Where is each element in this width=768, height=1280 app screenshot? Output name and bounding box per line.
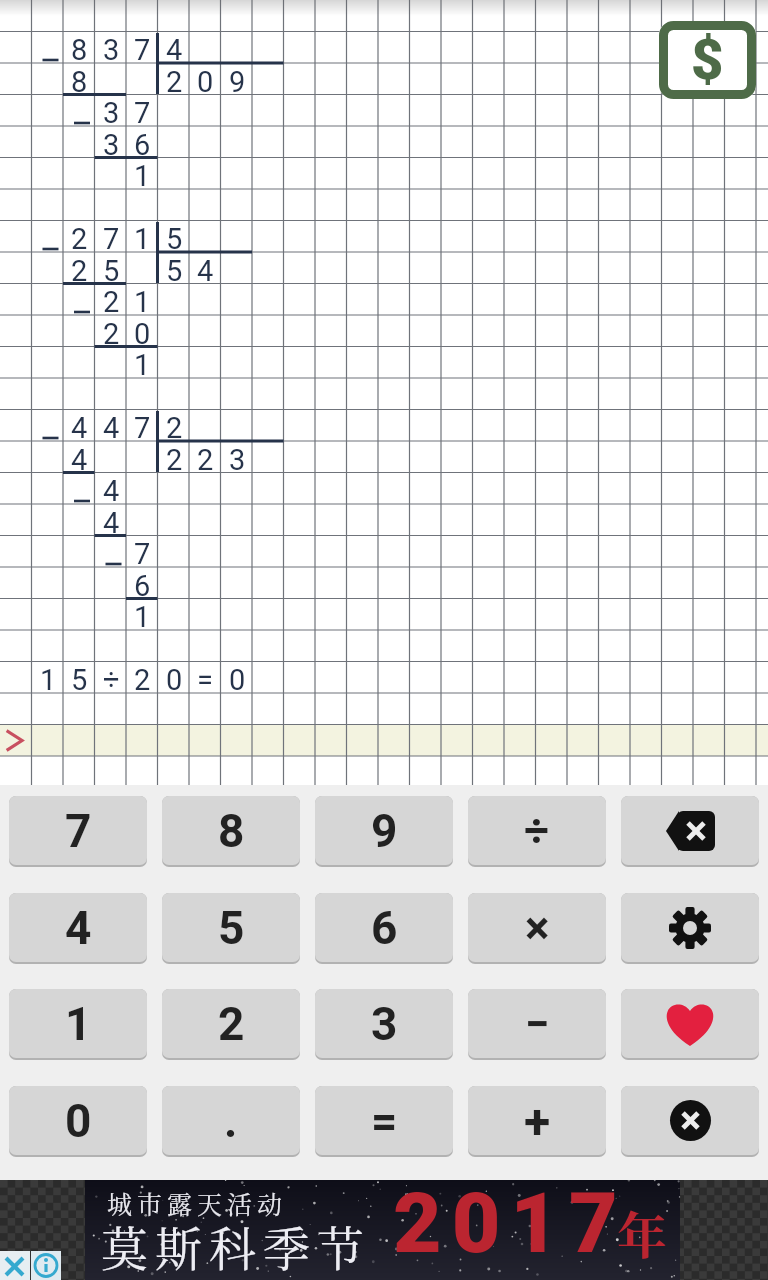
staticText: 5 bbox=[218, 901, 245, 955]
button[interactable] bbox=[621, 893, 759, 964]
staticText: 年 bbox=[617, 1196, 667, 1268]
staticText: 6 bbox=[371, 901, 398, 955]
staticText: 4 bbox=[166, 33, 183, 65]
staticText: 4 bbox=[197, 254, 214, 286]
button[interactable] bbox=[31, 1251, 61, 1280]
staticText: 2 bbox=[134, 663, 151, 695]
staticText: 5 bbox=[103, 254, 120, 286]
staticText: 9 bbox=[371, 804, 398, 858]
staticText: 8 bbox=[71, 33, 88, 65]
button[interactable]: = bbox=[315, 1086, 453, 1157]
button[interactable]: 0 bbox=[9, 1086, 147, 1157]
button[interactable] bbox=[0, 725, 768, 757]
staticText: 0 bbox=[197, 65, 214, 97]
staticText: 4 bbox=[65, 901, 92, 955]
staticText: = bbox=[371, 1094, 398, 1148]
button[interactable]: ÷ bbox=[468, 796, 606, 867]
staticText: 3 bbox=[371, 997, 398, 1051]
staticText: ÷ bbox=[524, 805, 550, 857]
staticText: 5 bbox=[71, 663, 88, 695]
button[interactable]: $ bbox=[659, 21, 756, 99]
staticText: × bbox=[525, 901, 550, 955]
staticText: − bbox=[525, 998, 550, 1050]
staticText: . bbox=[224, 1094, 238, 1148]
button[interactable]: 8 bbox=[162, 796, 300, 867]
button[interactable]: 4 bbox=[9, 893, 147, 964]
button[interactable] bbox=[621, 989, 759, 1060]
staticText: 9 bbox=[229, 65, 246, 97]
staticText: 7 bbox=[103, 222, 120, 254]
button[interactable] bbox=[621, 796, 759, 867]
staticText: 2 bbox=[166, 65, 183, 97]
staticText: 2 bbox=[71, 222, 88, 254]
staticText: 7 bbox=[134, 411, 151, 443]
staticText: 2 bbox=[218, 997, 245, 1051]
staticText: 4 bbox=[103, 506, 120, 538]
staticText: 0 bbox=[65, 1094, 92, 1148]
staticText: 莫斯科季节 bbox=[101, 1212, 371, 1280]
button[interactable]: 7 bbox=[9, 796, 147, 867]
staticText: 1 bbox=[134, 348, 151, 380]
staticText: 6 bbox=[134, 569, 151, 601]
button[interactable]: 2 bbox=[162, 989, 300, 1060]
staticText: 城市露天活动 bbox=[107, 1185, 288, 1221]
staticText: 2 bbox=[197, 443, 214, 475]
button[interactable]: 5 bbox=[162, 893, 300, 964]
button[interactable]: 城市露天活动 bbox=[0, 1180, 768, 1280]
staticText: 5 bbox=[166, 254, 183, 286]
staticText: $ bbox=[691, 27, 724, 93]
staticText: 7 bbox=[65, 804, 92, 858]
staticText: 2017 bbox=[393, 1180, 628, 1272]
staticText: 8 bbox=[71, 65, 88, 97]
staticText: 3 bbox=[229, 443, 246, 475]
staticText: 4 bbox=[103, 474, 120, 506]
staticText: 2 bbox=[166, 411, 183, 443]
button[interactable] bbox=[621, 1086, 759, 1157]
staticText: 2 bbox=[103, 317, 120, 349]
staticText: 0 bbox=[166, 663, 183, 695]
staticText: 6 bbox=[134, 128, 151, 160]
staticText: 1 bbox=[134, 600, 151, 632]
button[interactable] bbox=[0, 1251, 30, 1280]
staticText: 2 bbox=[71, 254, 88, 286]
staticText: 3 bbox=[103, 33, 120, 65]
staticText: 3 bbox=[103, 96, 120, 128]
staticText: 1 bbox=[134, 159, 151, 191]
staticText: 4 bbox=[71, 443, 88, 475]
button[interactable]: + bbox=[468, 1086, 606, 1157]
button[interactable]: − bbox=[468, 989, 606, 1060]
staticText: 5 bbox=[166, 222, 183, 254]
staticText: 2 bbox=[166, 443, 183, 475]
staticText: 0 bbox=[134, 317, 151, 349]
button[interactable]: × bbox=[468, 893, 606, 964]
staticText: 1 bbox=[65, 997, 92, 1051]
staticText: 7 bbox=[134, 33, 151, 65]
staticText: ÷ bbox=[103, 663, 120, 695]
button[interactable]: 3 bbox=[315, 989, 453, 1060]
button[interactable]: 9 bbox=[315, 796, 453, 867]
staticText: 1 bbox=[40, 663, 57, 695]
staticText: + bbox=[524, 1093, 551, 1149]
staticText: 1 bbox=[134, 222, 151, 254]
staticText: 4 bbox=[103, 411, 120, 443]
button[interactable]: 6 bbox=[315, 893, 453, 964]
staticText: 4 bbox=[71, 411, 88, 443]
button[interactable]: . bbox=[162, 1086, 300, 1157]
staticText: = bbox=[197, 663, 213, 695]
staticText: 3 bbox=[103, 128, 120, 160]
staticText: 8 bbox=[218, 804, 245, 858]
button[interactable]: 1 bbox=[9, 989, 147, 1060]
staticText: 0 bbox=[229, 663, 246, 695]
staticText: 7 bbox=[134, 537, 151, 569]
staticText: 1 bbox=[134, 285, 151, 317]
staticText: 7 bbox=[134, 96, 151, 128]
staticText: 2 bbox=[103, 285, 120, 317]
